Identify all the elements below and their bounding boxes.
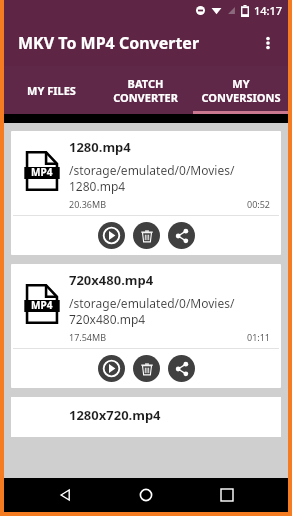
staticText: /storage/emulated/0/Movies/ (69, 295, 235, 311)
staticText: MY CONVERSIONS (201, 76, 281, 105)
button[interactable]: Recents (207, 478, 247, 512)
staticText: 01:11 (247, 331, 271, 343)
button[interactable]: Play (98, 355, 125, 382)
staticText: 14:17 (254, 3, 283, 18)
staticText: 720x480.mp4 (69, 311, 146, 327)
staticText: 720x480.mp4 (69, 271, 154, 289)
button[interactable]: Share (168, 222, 195, 249)
button[interactable]: MY FILES (4, 66, 98, 114)
button[interactable]: Delete (133, 222, 160, 249)
button[interactable]: 1280x720.mp4 (11, 397, 281, 437)
button[interactable]: Back (45, 478, 85, 512)
staticText: BATCH CONVERTER (113, 76, 178, 105)
staticText: /storage/emulated/0/Movies/ (69, 162, 235, 178)
button[interactable]: Play (98, 222, 125, 249)
button[interactable]: More options (248, 23, 288, 63)
button[interactable]: MP4 (11, 264, 281, 388)
button[interactable]: Share (168, 355, 195, 382)
staticText: 1280x720.mp4 (69, 406, 161, 424)
button[interactable]: Home (126, 478, 166, 512)
staticText: MP4 (31, 165, 53, 179)
button[interactable]: MP4 (11, 131, 281, 255)
staticText: 17.54MB (69, 331, 107, 343)
button[interactable]: MY CONVERSIONS (193, 66, 288, 114)
staticText: MP4 (31, 298, 53, 312)
staticText: 00:52 (247, 198, 271, 210)
staticText: MY FILES (27, 83, 76, 98)
staticText: 1280.mp4 (69, 178, 126, 194)
button[interactable]: BATCH CONVERTER (98, 66, 193, 114)
staticText: MKV To MP4 Converter (18, 32, 200, 54)
button[interactable]: Delete (133, 355, 160, 382)
staticText: 1280.mp4 (69, 138, 131, 156)
staticText: 20.36MB (69, 198, 107, 210)
